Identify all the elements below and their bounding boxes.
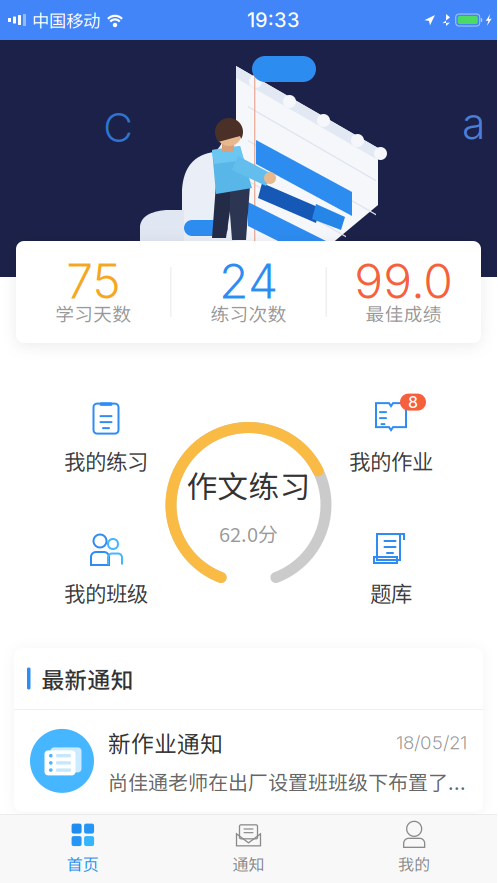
staticText: 最新通知 xyxy=(41,662,133,695)
staticText: 新作业通知 xyxy=(108,726,223,759)
staticText: 62.0分 xyxy=(219,519,278,548)
staticText: 75 xyxy=(66,252,120,310)
staticText: 通知 xyxy=(232,852,264,875)
staticText: 99.0 xyxy=(354,252,453,310)
staticText: 8 xyxy=(408,392,418,412)
button[interactable]: 新作业通知 xyxy=(14,710,483,812)
button[interactable]: 我的练习 xyxy=(64,398,148,476)
staticText: 我的作业 xyxy=(349,445,433,476)
staticText: 中国移动 xyxy=(32,7,100,33)
staticText: 我的班级 xyxy=(64,577,148,608)
staticText: 我的 xyxy=(398,852,430,875)
staticText: 19:33 xyxy=(247,8,300,32)
staticText: a xyxy=(462,98,485,149)
button[interactable]: 我的班级 xyxy=(64,530,148,608)
staticText: 作文练习 xyxy=(186,462,310,507)
button[interactable]: 通知 xyxy=(166,822,331,875)
staticText: 首页 xyxy=(67,852,99,875)
button[interactable]: 题库 xyxy=(367,530,415,608)
staticText: 题库 xyxy=(370,577,412,608)
button[interactable]: 首页 xyxy=(0,822,166,875)
button[interactable]: 我的 xyxy=(331,822,497,875)
staticText: 我的练习 xyxy=(64,445,148,476)
staticText: 24 xyxy=(219,252,278,310)
staticText: C xyxy=(104,103,132,152)
staticText: 18/05/21 xyxy=(396,731,467,754)
button[interactable]: 8 xyxy=(349,398,433,476)
staticText: 尚佳通老师在出厂设置班班级下布置了... xyxy=(108,767,466,796)
staticText: 练习次数 xyxy=(210,299,286,326)
staticText: 最佳成绩 xyxy=(366,299,442,326)
staticText: 学习天数 xyxy=(55,299,131,326)
